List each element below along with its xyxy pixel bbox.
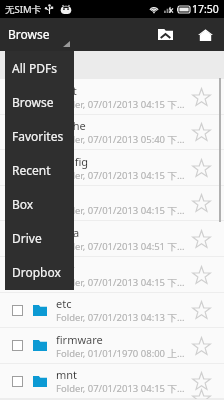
staticText: Folder, 07/01/2013 04:15 下… [56, 98, 185, 111]
button[interactable]: d [0, 186, 224, 221]
staticText: Folder, 07/01/2013 04:51 下… [56, 240, 185, 253]
staticText: Favorites [12, 128, 64, 144]
staticText: etc [56, 296, 72, 311]
staticText: cache [56, 118, 86, 133]
button[interactable]: cache [0, 115, 224, 150]
staticText: Box [12, 196, 34, 212]
staticText: Dropbox [12, 264, 61, 280]
staticText: mnt [56, 367, 78, 382]
button[interactable]: Favorite [187, 83, 215, 111]
button[interactable]: data [0, 221, 224, 257]
button[interactable]: Home [189, 18, 222, 51]
staticText: All PDFs [12, 60, 57, 76]
staticText: Folder, 01/01/1970 08:00 上… [56, 347, 185, 360]
button[interactable]: acct [0, 79, 224, 115]
button[interactable]: Browse [5, 85, 74, 119]
button[interactable]: firmware [0, 328, 224, 364]
button[interactable]: Favorite [187, 118, 215, 146]
button[interactable]: Drive [5, 221, 74, 255]
button[interactable]: Favorite [187, 261, 215, 289]
button[interactable]: Favorite [187, 367, 215, 395]
staticText: Browse [8, 26, 50, 42]
button[interactable]: All PDFs [5, 51, 74, 85]
button[interactable]: mnt [0, 364, 224, 399]
button[interactable]: dev [0, 257, 224, 293]
button[interactable]: Box [5, 187, 74, 221]
button[interactable]: Favorite [187, 225, 215, 253]
button[interactable]: Up one level [149, 18, 182, 51]
staticText: firmware [56, 332, 103, 347]
staticText: Drive [12, 230, 42, 246]
button[interactable]: Favorite [187, 332, 215, 360]
button[interactable]: Favorite [187, 296, 215, 324]
button[interactable]: config [0, 150, 224, 186]
button[interactable]: Dropbox [5, 255, 74, 289]
staticText: config [56, 154, 89, 169]
staticText: Folder, 07/01/2013 04:15 下… [56, 276, 185, 289]
button[interactable]: etc [0, 293, 224, 328]
button[interactable]: Favorite [187, 154, 215, 182]
staticText: data [56, 225, 80, 240]
staticText: acct [56, 83, 77, 98]
button[interactable]: Favorite [187, 189, 215, 217]
staticText: Recent [12, 162, 51, 178]
staticText: Folder, 07/01/2013 04:15 下… [56, 382, 185, 395]
staticText: Folder, 07/01/2013 04:13 下… [56, 311, 185, 324]
staticText: Folder, 07/01/2013 04:15 下… [56, 204, 185, 217]
staticText: Browse [12, 94, 54, 110]
staticText: 17:50 [192, 2, 219, 16]
staticText: Folder, 07/01/2013 04:15 下… [56, 169, 185, 182]
staticText: Folder, 07/01/2013 05:40 下… [56, 133, 185, 146]
button[interactable]: Recent [5, 153, 74, 187]
button[interactable]: Favorites [5, 119, 74, 153]
staticText: 无SIM卡 [5, 3, 42, 16]
staticText: dev [56, 261, 75, 276]
